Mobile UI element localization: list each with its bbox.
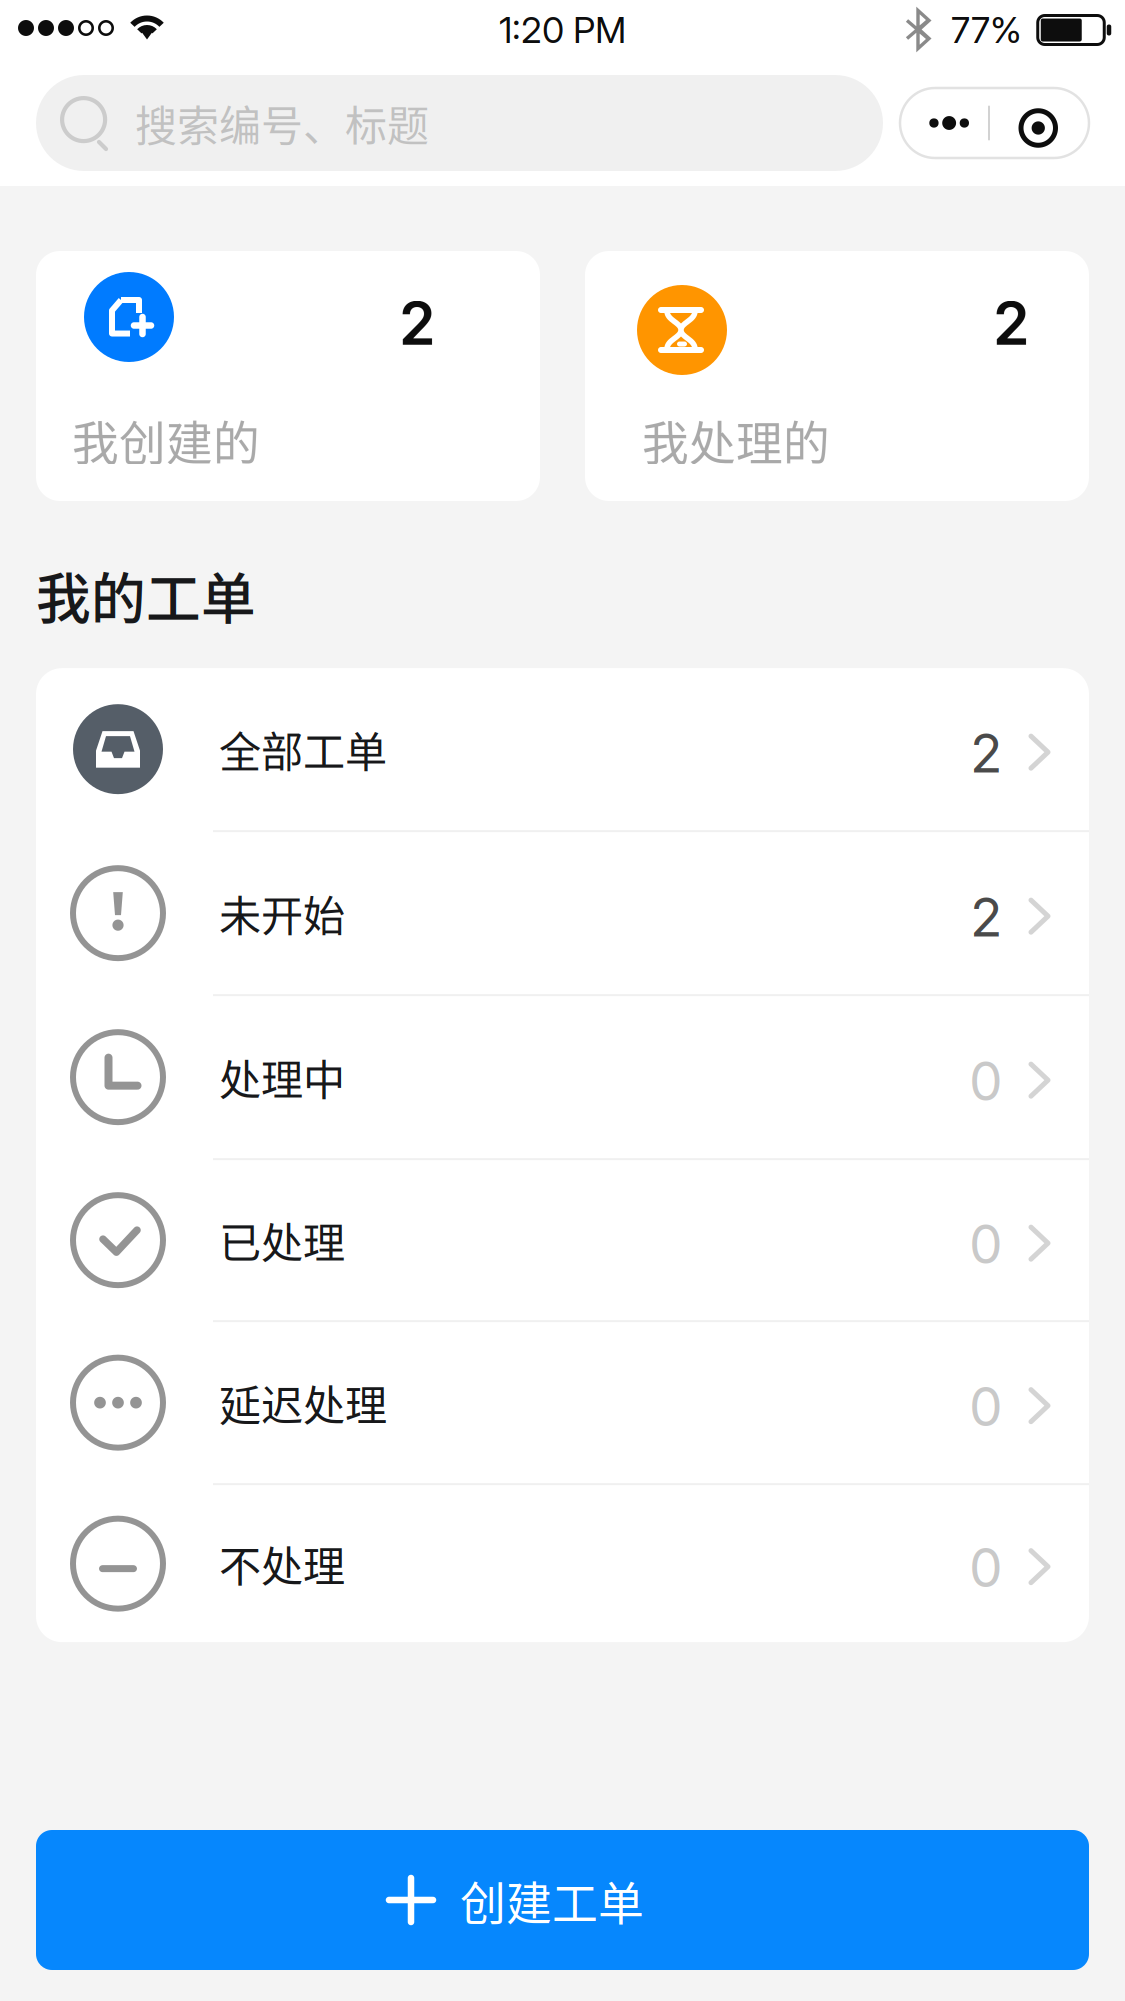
staticText: 0 bbox=[969, 1374, 1003, 1439]
button[interactable]: 菜单 bbox=[900, 88, 1089, 158]
staticText: 2 bbox=[399, 288, 436, 359]
button[interactable]: 2 bbox=[36, 251, 540, 501]
staticText: 2 bbox=[993, 288, 1030, 359]
staticText: 77% bbox=[951, 8, 1022, 52]
button[interactable]: 搜索编号、标题 bbox=[36, 75, 883, 171]
button[interactable]: 2 bbox=[585, 251, 1089, 501]
button[interactable]: 创建工单 bbox=[36, 1830, 1089, 1970]
staticText: 全部工单 bbox=[219, 719, 387, 780]
staticText: 搜索编号、标题 bbox=[135, 93, 429, 153]
staticText: 已处理 bbox=[219, 1210, 345, 1271]
staticText: 延迟处理 bbox=[219, 1372, 387, 1433]
staticText: 0 bbox=[969, 1535, 1003, 1600]
staticText: 2 bbox=[970, 721, 1003, 785]
staticText: 创建工单 bbox=[460, 1867, 644, 1933]
staticText: 处理中 bbox=[219, 1047, 345, 1108]
staticText: 0 bbox=[969, 1212, 1003, 1276]
staticText: 2 bbox=[970, 885, 1003, 949]
staticText: 我创建的 bbox=[72, 406, 260, 474]
staticText: 1:20 PM bbox=[499, 8, 626, 52]
staticText: 未开始 bbox=[219, 883, 345, 944]
button[interactable]: 已处理 bbox=[36, 1160, 1089, 1320]
staticText: 我处理的 bbox=[642, 406, 830, 474]
button[interactable]: 全部工单 bbox=[36, 668, 1089, 830]
button[interactable]: 处理中 bbox=[36, 996, 1089, 1158]
button[interactable]: 延迟处理 bbox=[36, 1322, 1089, 1483]
staticText: 不处理 bbox=[219, 1533, 345, 1594]
staticText: 我的工单 bbox=[36, 555, 256, 634]
staticText: 0 bbox=[969, 1049, 1003, 1113]
button[interactable]: 不处理 bbox=[36, 1485, 1089, 1642]
button[interactable]: 未开始 bbox=[36, 832, 1089, 994]
